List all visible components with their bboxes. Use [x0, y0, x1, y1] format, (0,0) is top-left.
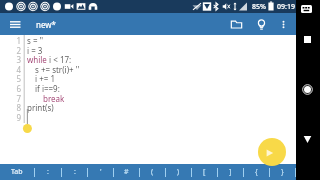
- staticText: }: [281, 167, 284, 177]
- staticText: #: [124, 167, 129, 177]
- staticText: 8: [3, 102, 21, 113]
- staticText: s += str(i)+ '': [35, 64, 80, 75]
- button[interactable]: Open file: [227, 15, 245, 33]
- button[interactable]: Run: [258, 138, 286, 166]
- staticText: break: [43, 93, 65, 104]
- staticText: 6: [3, 83, 21, 94]
- button[interactable]: [: [192, 164, 217, 180]
- staticText: 3: [3, 54, 21, 65]
- button[interactable]: Tab: [0, 164, 34, 180]
- staticText: ): [177, 167, 180, 177]
- button[interactable]: Navigation menu: [5, 14, 25, 34]
- button[interactable]: ): [166, 164, 191, 180]
- staticText: print(s): [27, 102, 54, 113]
- staticText: {: [255, 167, 258, 177]
- staticText: 9: [3, 112, 21, 123]
- button[interactable]: Hints: [252, 15, 270, 33]
- staticText: 85%: [252, 2, 266, 12]
- button[interactable]: Back: [298, 130, 317, 149]
- button[interactable]: Switch keyboard: [301, 5, 312, 13]
- button[interactable]: Recent apps: [298, 30, 317, 49]
- staticText: 09:19: [277, 2, 295, 12]
- button[interactable]: More options: [274, 15, 292, 33]
- button[interactable]: :: [35, 164, 61, 180]
- button[interactable]: Home: [298, 80, 317, 99]
- staticText: i < 17:: [47, 54, 72, 65]
- staticText: :: [74, 167, 76, 177]
- staticText: (: [151, 167, 154, 177]
- button[interactable]: (: [140, 164, 165, 180]
- staticText: if i==9:: [35, 83, 60, 94]
- staticText: new*: [36, 19, 56, 30]
- staticText: i += 1: [35, 73, 55, 84]
- staticText: [: [203, 167, 206, 177]
- button[interactable]: {: [244, 164, 269, 180]
- staticText: ]: [229, 167, 232, 177]
- staticText: 2: [3, 45, 21, 56]
- staticText: 5: [3, 73, 21, 84]
- button[interactable]: }: [270, 164, 295, 180]
- staticText: Tab: [11, 167, 23, 177]
- button[interactable]: #: [114, 164, 139, 180]
- staticText: 7: [3, 93, 21, 104]
- staticText: 1: [3, 35, 21, 46]
- button[interactable]: ': [88, 164, 113, 180]
- button[interactable]: ]: [218, 164, 243, 180]
- staticText: :: [47, 167, 49, 177]
- button[interactable]: :: [62, 164, 87, 180]
- staticText: 4: [3, 64, 21, 75]
- staticText: s = '': [27, 35, 44, 46]
- staticText: i = 3: [27, 45, 43, 56]
- staticText: while: [27, 54, 47, 65]
- staticText: ': [100, 167, 102, 177]
